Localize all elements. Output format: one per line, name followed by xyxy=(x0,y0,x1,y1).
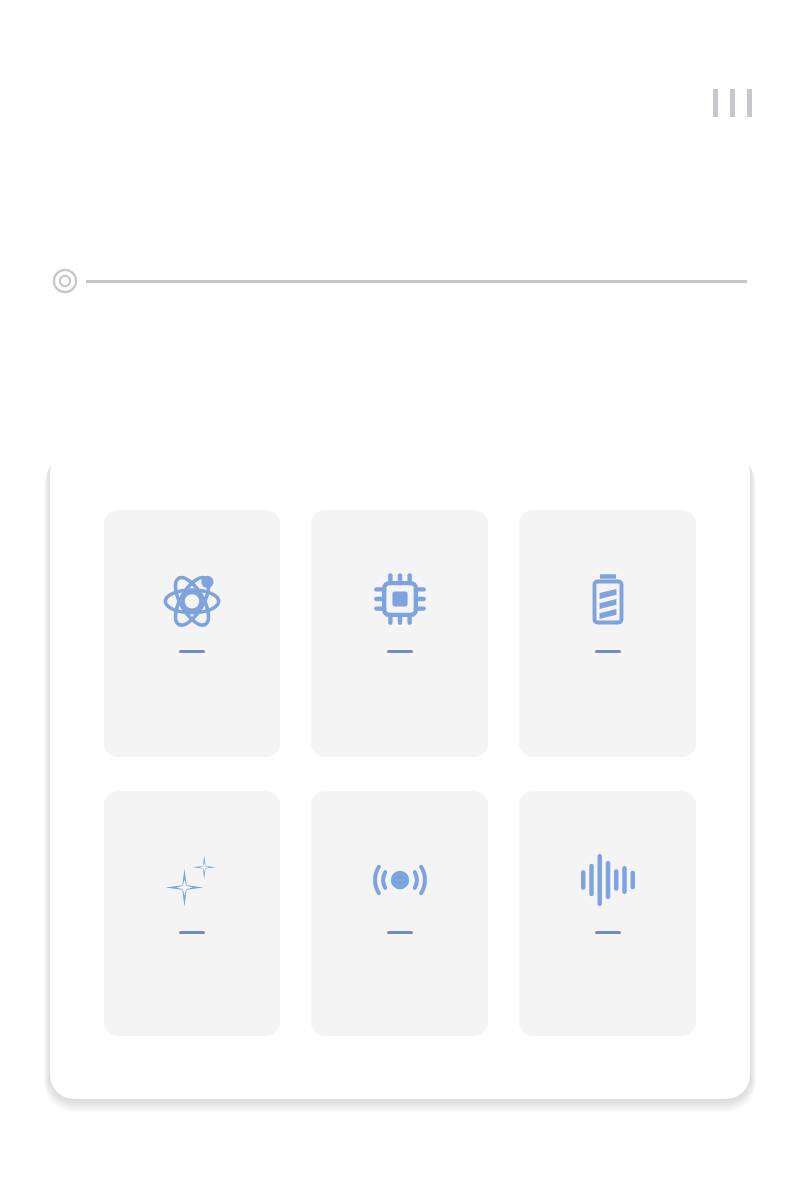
button[interactable]: Audio xyxy=(519,791,696,1036)
button[interactable]: Sparkle xyxy=(104,791,280,1036)
button[interactable]: Processor xyxy=(311,510,488,757)
button[interactable]: Menu xyxy=(713,86,757,120)
button[interactable]: Battery xyxy=(519,510,696,757)
button[interactable]: Atom xyxy=(104,510,280,757)
button[interactable]: Target xyxy=(50,266,80,296)
button[interactable]: Signal xyxy=(311,791,488,1036)
